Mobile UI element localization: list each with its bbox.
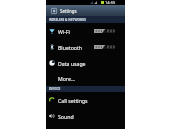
button[interactable]: Bluetooth switch [94,45,114,49]
staticText: Sound [58,113,74,120]
staticText: WIRELESS & NETWORKS [49,18,87,22]
button[interactable]: Wi-Fi [46,23,125,39]
button[interactable]: Sound [46,108,125,124]
button[interactable]: Data usage [46,55,125,71]
button[interactable]: Settings [46,5,125,16]
staticText: More... [58,75,75,82]
staticText: Call settings [58,97,88,104]
button[interactable]: Call settings [46,92,125,108]
staticText: 14:55 [105,0,116,5]
button[interactable]: Wi-Fi switch [94,29,114,33]
staticText: DEVICE [49,87,61,91]
button[interactable]: More... [46,71,125,86]
staticText: Bluetooth [58,44,83,51]
button[interactable]: Bluetooth [46,39,125,55]
staticText: Data usage [58,60,86,67]
staticText: Wi-Fi [58,28,70,35]
staticText: Settings [60,8,77,14]
